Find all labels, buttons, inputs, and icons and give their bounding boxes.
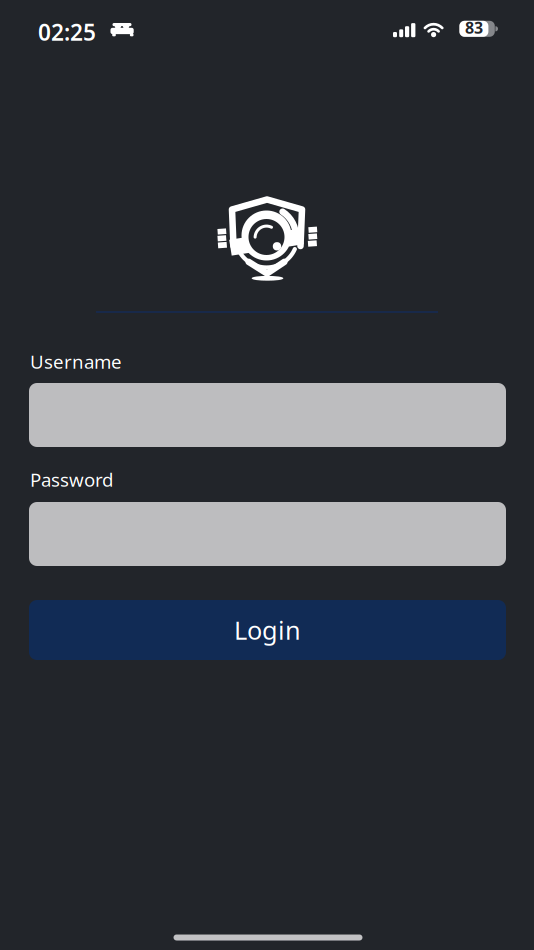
button[interactable]: Username [29,383,506,447]
button[interactable]: Login [29,600,506,660]
staticText: 02:25 [38,17,96,47]
button[interactable]: Password [29,502,506,566]
staticText: Login [234,613,301,647]
staticText: Password [30,467,113,492]
staticText: 83 [465,17,483,38]
staticText: Username [30,349,122,374]
